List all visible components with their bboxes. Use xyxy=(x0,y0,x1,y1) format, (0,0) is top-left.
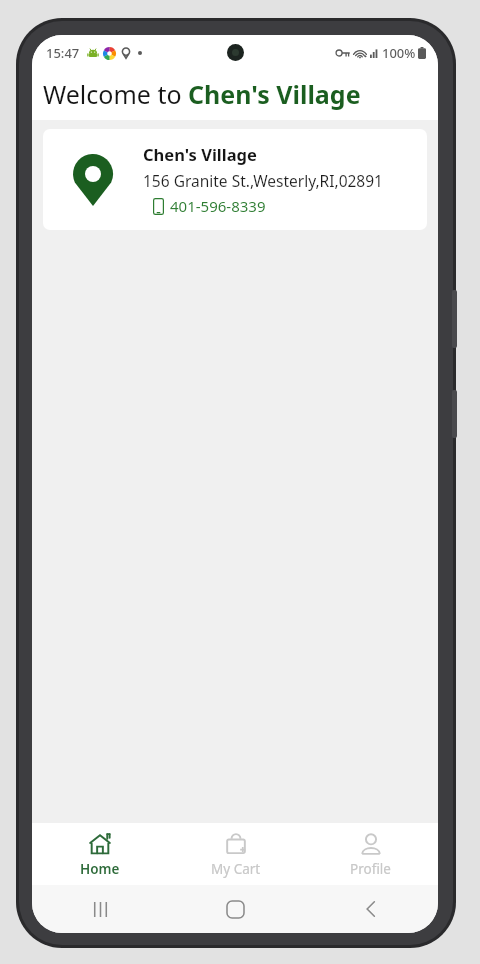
button[interactable]: Chen's Village xyxy=(43,129,427,230)
button[interactable]: Profile xyxy=(303,823,438,885)
staticText: 100% xyxy=(382,44,416,62)
button[interactable]: Home xyxy=(168,885,303,933)
staticText: 401-596-8339 xyxy=(170,196,266,216)
staticText: Home xyxy=(80,860,120,878)
staticText: Welcome to Chen's Village xyxy=(43,77,361,111)
staticText: 15:47 xyxy=(46,44,80,62)
button[interactable]: Back xyxy=(303,885,438,933)
button[interactable]: My Cart xyxy=(168,823,303,885)
staticText: Chen's Village xyxy=(143,143,257,165)
button[interactable]: Home xyxy=(32,823,168,885)
staticText: 156 Granite St.,Westerly,RI,02891 xyxy=(143,170,383,191)
staticText: My Cart xyxy=(211,860,261,878)
staticText: Profile xyxy=(350,860,391,878)
button[interactable]: Recent apps xyxy=(32,885,168,933)
